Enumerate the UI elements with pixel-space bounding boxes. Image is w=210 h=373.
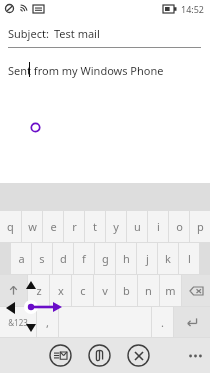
staticText: c	[80, 283, 86, 298]
staticText: j	[146, 251, 149, 266]
staticText: u	[134, 219, 141, 234]
button[interactable]: Attach	[88, 344, 111, 367]
staticText: e	[50, 219, 57, 234]
button[interactable]: p	[190, 211, 210, 242]
button[interactable]: k	[158, 243, 178, 274]
button[interactable]: Enter	[174, 307, 210, 337]
staticText: o	[176, 219, 183, 234]
button[interactable]: More options	[185, 346, 205, 366]
button[interactable]: u	[127, 211, 147, 242]
button[interactable]: Subject:	[8, 26, 210, 41]
staticText: h	[123, 251, 130, 266]
button[interactable]: s	[32, 243, 52, 274]
button[interactable]: r	[64, 211, 84, 242]
staticText: v	[102, 283, 108, 298]
button[interactable]	[59, 307, 151, 337]
button[interactable]: &123	[0, 307, 36, 337]
staticText: r	[72, 219, 77, 234]
button[interactable]: z	[28, 275, 49, 306]
button[interactable]: Send	[49, 344, 72, 367]
button[interactable]: Close	[127, 344, 150, 367]
staticText: n	[145, 283, 152, 298]
button[interactable]: m	[160, 275, 181, 306]
staticText: x	[58, 283, 64, 298]
button[interactable]: e	[43, 211, 63, 242]
staticText: l	[188, 251, 191, 266]
button[interactable]: a	[11, 243, 31, 274]
button[interactable]: Sent from my Windows Phone	[8, 63, 210, 78]
button[interactable]: w	[22, 211, 42, 242]
staticText: y	[113, 219, 119, 234]
staticText: d	[60, 251, 67, 266]
staticText: q	[7, 219, 14, 234]
staticText: g	[102, 251, 109, 266]
button[interactable]: y	[106, 211, 126, 242]
button[interactable]: h	[116, 243, 136, 274]
staticText: w	[28, 219, 37, 234]
button[interactable]: g	[95, 243, 115, 274]
staticText: f	[82, 251, 86, 266]
button[interactable]: f	[74, 243, 94, 274]
button[interactable]: ,	[37, 307, 58, 337]
button[interactable]: t	[85, 211, 105, 242]
button[interactable]: d	[53, 243, 73, 274]
button[interactable]: i	[148, 211, 168, 242]
button[interactable]: l	[179, 243, 199, 274]
button[interactable]: b	[116, 275, 137, 306]
staticText: k	[165, 251, 171, 266]
button[interactable]: q	[0, 211, 21, 242]
button[interactable]: j	[137, 243, 157, 274]
button[interactable]: v	[94, 275, 115, 306]
staticText: Sent from my Windows Phone	[8, 63, 164, 78]
staticText: i	[157, 219, 160, 234]
staticText: .	[161, 315, 164, 330]
button[interactable]: Backspace	[182, 275, 210, 306]
staticText: b	[123, 283, 130, 298]
staticText: Subject:	[8, 26, 49, 41]
button[interactable]: x	[50, 275, 71, 306]
staticText: Test mail	[54, 26, 100, 41]
button[interactable]: .	[152, 307, 173, 337]
button[interactable]: Shift	[0, 275, 27, 306]
staticText: t	[93, 219, 97, 234]
staticText: ,	[46, 315, 49, 330]
staticText: m	[165, 283, 176, 298]
staticText: s	[39, 251, 45, 266]
button[interactable]: c	[72, 275, 93, 306]
staticText: a	[18, 251, 25, 266]
button[interactable]: o	[169, 211, 189, 242]
staticText: p	[197, 219, 204, 234]
staticText: 14:52	[181, 3, 205, 15]
button[interactable]: n	[138, 275, 159, 306]
staticText: &123	[8, 317, 28, 328]
staticText: z	[36, 283, 42, 298]
